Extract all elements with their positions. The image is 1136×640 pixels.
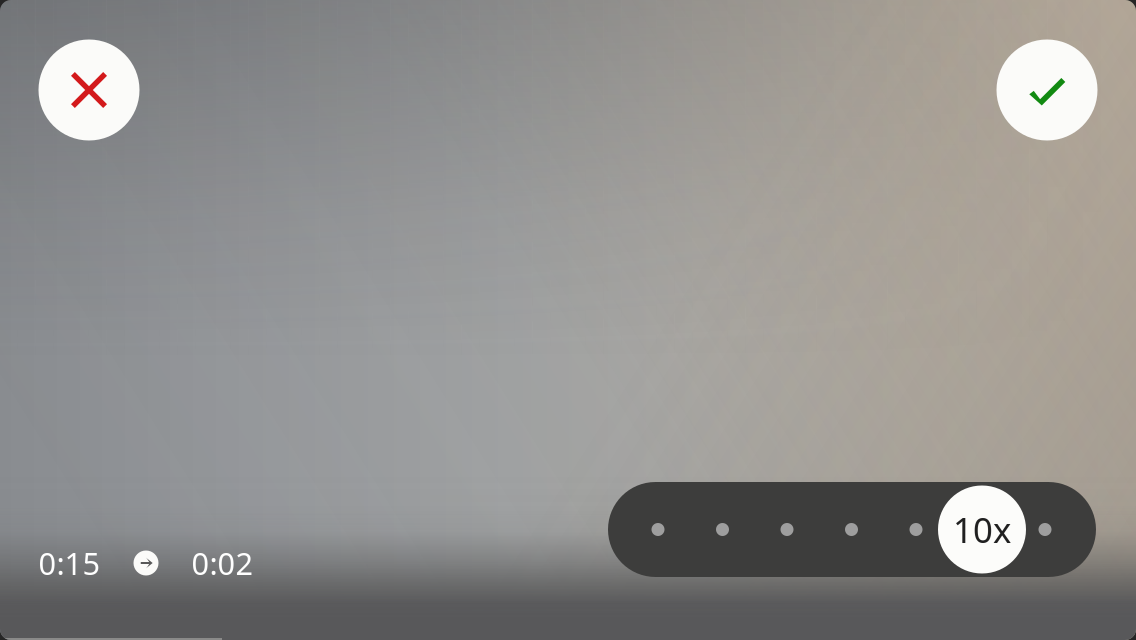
staticText: 10x (953, 506, 1011, 552)
button[interactable]: Cancel (38, 39, 139, 140)
button[interactable]: Done (996, 39, 1097, 140)
staticText: 0:02 (191, 543, 253, 583)
button[interactable]: 10x (938, 485, 1026, 573)
staticText: 0:15 (38, 543, 100, 583)
